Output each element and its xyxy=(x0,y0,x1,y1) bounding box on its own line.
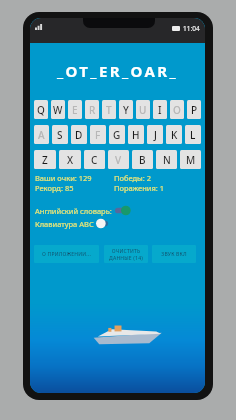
button[interactable]: N xyxy=(156,150,177,169)
staticText: A xyxy=(38,128,45,142)
button[interactable]: E xyxy=(68,100,82,119)
staticText: Ваши очки: 129 xyxy=(35,173,92,183)
staticText: C xyxy=(91,153,98,167)
staticText: P xyxy=(191,103,198,117)
button[interactable]: О ПРИЛОЖЕНИИ... xyxy=(34,245,99,263)
button[interactable]: X xyxy=(59,150,81,169)
button[interactable]: S xyxy=(52,125,68,144)
staticText: T xyxy=(106,103,112,117)
button[interactable]: ОЧИСТИТЬ ДАННЫЕ (14) xyxy=(104,245,148,263)
staticText: J xyxy=(154,128,157,142)
staticText: X xyxy=(67,153,74,167)
staticText: 11:04 xyxy=(183,24,200,33)
button[interactable]: R xyxy=(85,100,99,119)
button[interactable]: J xyxy=(147,125,163,144)
staticText: Клавиатура ABC xyxy=(35,219,94,229)
staticText: Поражения: 1 xyxy=(114,183,165,193)
staticText: I xyxy=(158,103,162,117)
button[interactable]: U xyxy=(136,100,150,119)
staticText: F xyxy=(95,128,101,142)
staticText: ОЧИСТИТЬ ДАННЫЕ (14) xyxy=(109,248,143,261)
button[interactable]: Q xyxy=(34,100,48,119)
staticText: Английский словарь: xyxy=(35,206,112,216)
button[interactable]: B xyxy=(132,150,153,169)
staticText: S xyxy=(57,128,63,142)
button[interactable]: A xyxy=(34,125,49,144)
staticText: Q xyxy=(37,103,45,117)
staticText: V xyxy=(115,153,122,167)
staticText: Z xyxy=(42,153,48,167)
button[interactable]: L xyxy=(185,125,201,144)
staticText: Победы: 2 xyxy=(114,173,151,183)
staticText: Рекорд: 85 xyxy=(35,183,74,193)
button[interactable]: Z xyxy=(34,150,56,169)
button[interactable]: O xyxy=(170,100,184,119)
button[interactable]: F xyxy=(90,125,106,144)
staticText: _OT_ER_OAR_ xyxy=(30,61,205,81)
staticText: W xyxy=(53,103,63,117)
staticText: B xyxy=(139,153,146,167)
other: Switch off xyxy=(96,218,110,229)
button[interactable]: M xyxy=(180,150,201,169)
button[interactable]: H xyxy=(128,125,144,144)
button[interactable]: K xyxy=(166,125,182,144)
staticText: U xyxy=(139,103,147,117)
button[interactable]: T xyxy=(102,100,116,119)
staticText: О ПРИЛОЖЕНИИ... xyxy=(42,251,91,258)
staticText: ЗВУК ВКЛ xyxy=(161,251,187,258)
button[interactable]: Y xyxy=(119,100,133,119)
staticText: Y xyxy=(123,103,129,117)
button[interactable]: P xyxy=(187,100,201,119)
button[interactable]: V xyxy=(108,150,129,169)
button[interactable]: I xyxy=(153,100,167,119)
button[interactable]: W xyxy=(51,100,65,119)
button[interactable]: Английский словарь: xyxy=(35,204,129,217)
button[interactable]: C xyxy=(84,150,105,169)
staticText: E xyxy=(72,103,78,117)
staticText: D xyxy=(75,128,83,142)
button[interactable]: ЗВУК ВКЛ xyxy=(152,245,196,263)
staticText: N xyxy=(163,153,171,167)
button[interactable]: G xyxy=(109,125,125,144)
staticText: O xyxy=(173,103,181,117)
staticText: K xyxy=(171,128,178,142)
button[interactable]: D xyxy=(71,125,87,144)
button[interactable]: Клавиатура ABC xyxy=(35,217,110,230)
staticText: H xyxy=(132,128,140,142)
staticText: R xyxy=(89,103,96,117)
staticText: L xyxy=(190,128,196,142)
staticText: M xyxy=(186,153,196,167)
staticText: G xyxy=(113,128,121,142)
other: Switch on xyxy=(115,205,129,216)
